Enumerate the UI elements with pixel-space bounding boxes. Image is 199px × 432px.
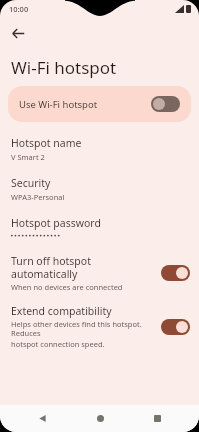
button[interactable]: Toggle off	[151, 96, 180, 112]
button[interactable]: Back	[27, 405, 57, 432]
staticText: WPA3-Personal	[11, 192, 65, 202]
staticText: hotspot connection speed.	[11, 339, 105, 349]
staticText: 10:00	[9, 4, 29, 14]
staticText: Wi-Fi hotspot	[11, 56, 117, 79]
button[interactable]: Extend compatibility	[0, 304, 199, 349]
button[interactable]: Recent apps	[142, 405, 172, 432]
button[interactable]: Hotspot name	[0, 136, 199, 162]
button[interactable]: Hotspot password	[0, 216, 199, 240]
staticText: Hotspot password	[11, 216, 101, 230]
staticText: When no devices are connected	[11, 282, 123, 292]
button[interactable]: Use Wi-Fi hotspot	[8, 86, 191, 122]
staticText: V Smart 2	[11, 152, 45, 162]
button[interactable]: Toggle on	[161, 265, 190, 281]
staticText: Turn off hotspot automatically	[11, 254, 155, 281]
button[interactable]: Home	[85, 405, 115, 432]
staticText: Use Wi-Fi hotspot	[19, 98, 151, 111]
button[interactable]: Security	[0, 176, 199, 202]
button[interactable]: Toggle on	[161, 319, 190, 335]
button[interactable]: Back	[5, 20, 31, 46]
staticText: Helps other devices find this hotspot. R…	[11, 319, 155, 339]
staticText: Extend compatibility	[11, 304, 112, 318]
staticText: Hotspot name	[11, 136, 82, 150]
button[interactable]: Turn off hotspot automatically	[0, 254, 199, 292]
staticText: Security	[11, 176, 51, 190]
